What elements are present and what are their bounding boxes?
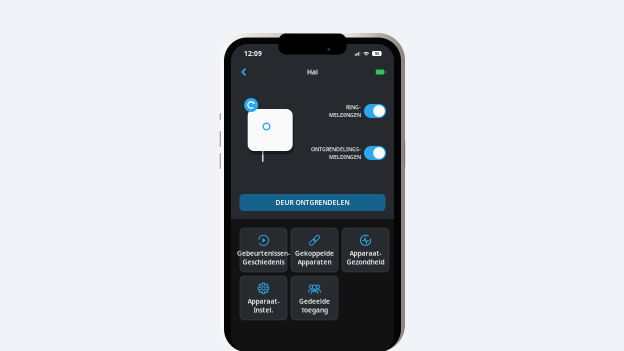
button[interactable]: Gekoppelde: [291, 228, 338, 272]
staticText: DEUR ONTGRENDELEN: [275, 198, 349, 207]
button[interactable]: Gebeurtenissen-: [240, 228, 287, 272]
button[interactable]: Apparaat-: [342, 228, 389, 272]
staticText: Apparaat-: [349, 249, 381, 258]
staticText: Hal: [307, 68, 318, 76]
button[interactable]: DEUR ONTGRENDELEN: [239, 194, 385, 211]
staticText: 12:09: [244, 49, 262, 58]
staticText: Apparaat-: [247, 297, 279, 306]
button[interactable]: Battery level: [372, 64, 390, 80]
staticText: Gebeurtenissen-: [237, 249, 290, 258]
staticText: Gedeelde: [299, 297, 330, 306]
button[interactable]: RING-: [303, 102, 386, 120]
staticText: 93: [375, 51, 379, 56]
staticText: Geschiedenis: [242, 257, 284, 266]
staticText: Gekoppelde: [295, 249, 334, 258]
button[interactable]: Apparaat-: [240, 276, 287, 320]
staticText: Toegang: [301, 305, 328, 314]
staticText: MELDINGEN: [329, 153, 361, 160]
staticText: RING-: [346, 103, 361, 111]
button[interactable]: Back: [235, 64, 253, 80]
staticText: Instel.: [253, 305, 273, 314]
staticText: MELDINGEN: [329, 111, 361, 118]
staticText: ONTGRENDELINGS-: [311, 145, 361, 153]
button[interactable]: ONTGRENDELINGS-: [303, 144, 386, 162]
staticText: Apparaten: [297, 257, 331, 266]
button[interactable]: Gedeelde: [291, 276, 338, 320]
staticText: Gezondheid: [346, 257, 384, 266]
